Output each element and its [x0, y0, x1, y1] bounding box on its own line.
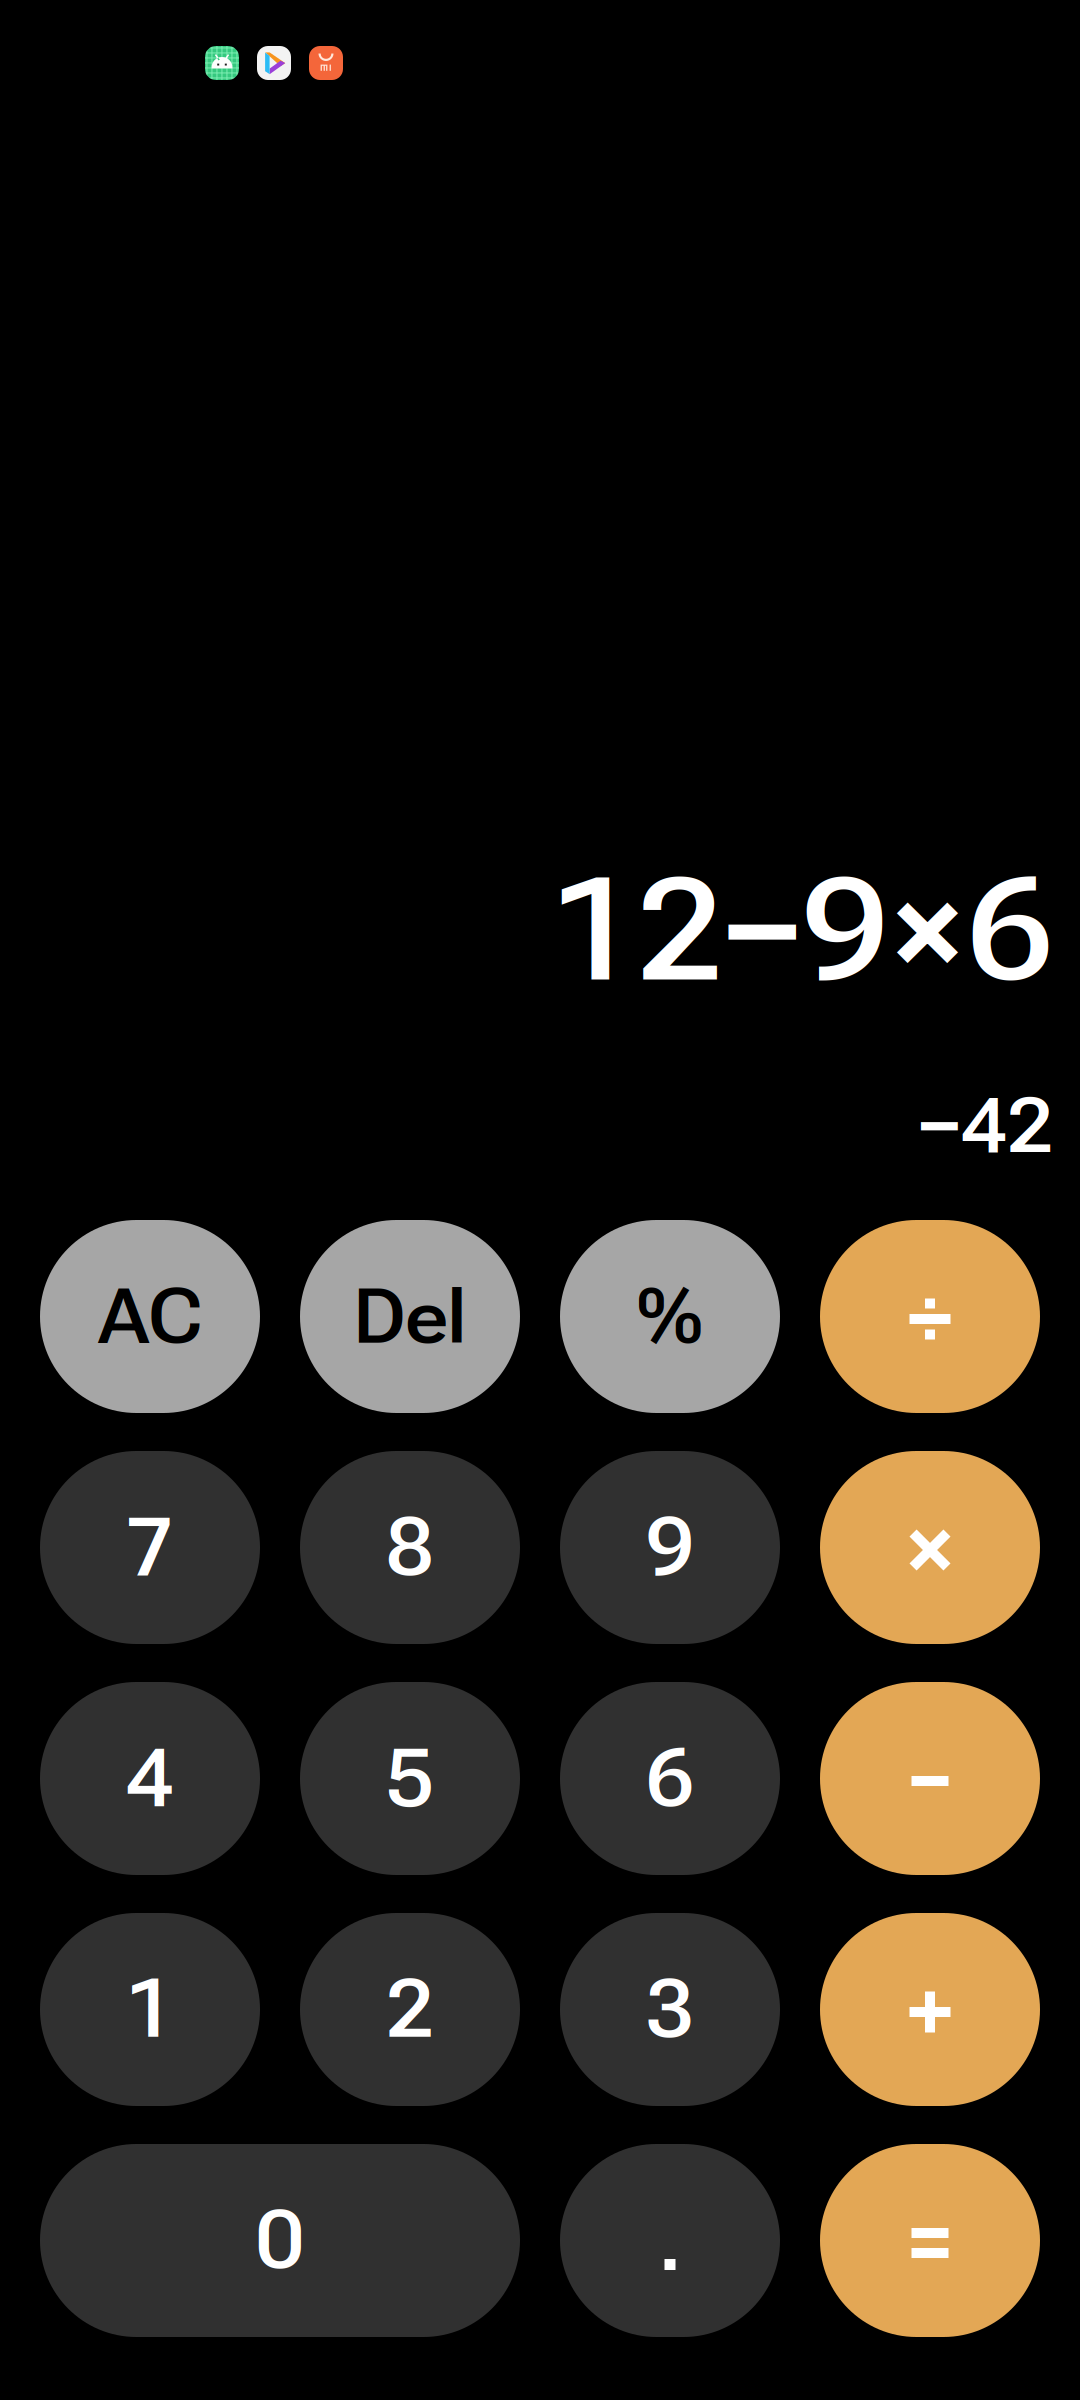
- button[interactable]: 1: [40, 1913, 260, 2106]
- staticText: 2: [386, 1963, 434, 2056]
- button[interactable]: 2: [300, 1913, 520, 2106]
- staticText: −42: [918, 1080, 1053, 1171]
- button[interactable]: 0: [40, 2144, 520, 2337]
- button[interactable]: 5: [300, 1682, 520, 1875]
- staticText: 5: [386, 1732, 434, 1825]
- button[interactable]: Divide: [820, 1220, 1040, 1413]
- staticText: 1: [126, 1963, 174, 2056]
- staticText: %: [637, 1272, 703, 1361]
- staticText: AC: [98, 1272, 201, 1361]
- button[interactable]: Decimal point: [560, 2144, 780, 2337]
- staticText: 3: [646, 1963, 694, 2056]
- button[interactable]: 7: [40, 1451, 260, 1644]
- staticText: 4: [126, 1732, 174, 1825]
- staticText: 0: [256, 2194, 304, 2287]
- staticText: 6: [646, 1732, 694, 1825]
- staticText: 7: [126, 1501, 174, 1594]
- button[interactable]: 6: [560, 1682, 780, 1875]
- staticText: 9: [646, 1501, 694, 1594]
- button[interactable]: Multiply: [820, 1451, 1040, 1644]
- button[interactable]: Del: [300, 1220, 520, 1413]
- button[interactable]: 4: [40, 1682, 260, 1875]
- button[interactable]: AC: [40, 1220, 260, 1413]
- button[interactable]: Equals: [820, 2144, 1040, 2337]
- button[interactable]: 8: [300, 1451, 520, 1644]
- staticText: Del: [353, 1272, 466, 1361]
- button[interactable]: %: [560, 1220, 780, 1413]
- button[interactable]: 9: [560, 1451, 780, 1644]
- button[interactable]: Add: [820, 1913, 1040, 2106]
- staticText: 8: [386, 1501, 434, 1594]
- staticText: 12−9×6: [551, 847, 1053, 1014]
- button[interactable]: 3: [560, 1913, 780, 2106]
- button[interactable]: Subtract: [820, 1682, 1040, 1875]
